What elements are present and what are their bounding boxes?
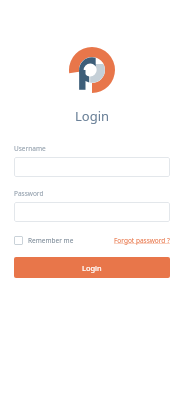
button[interactable]: Username input bbox=[14, 157, 170, 177]
staticText: Login bbox=[82, 263, 102, 273]
staticText: Remember me bbox=[28, 236, 74, 245]
button[interactable]: Forgot password ? bbox=[114, 234, 170, 247]
button[interactable]: Login bbox=[14, 257, 170, 278]
other: App logo bbox=[69, 47, 115, 93]
staticText: Login bbox=[75, 107, 110, 125]
button[interactable]: Remember me bbox=[14, 234, 74, 247]
staticText: Username bbox=[14, 144, 46, 153]
staticText: Forgot password ? bbox=[114, 236, 170, 245]
staticText: Password bbox=[14, 189, 44, 198]
button[interactable]: Password input bbox=[14, 202, 170, 222]
